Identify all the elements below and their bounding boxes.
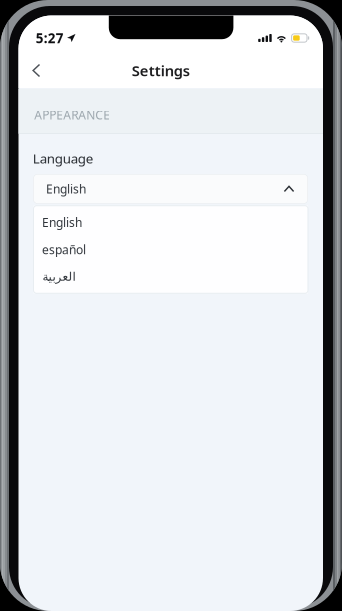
staticText: APPEARANCE	[34, 107, 110, 123]
staticText: English	[46, 181, 86, 197]
button[interactable]: English	[33, 209, 308, 236]
staticText: español	[42, 242, 86, 257]
staticText: English	[42, 214, 82, 230]
staticText: العربية	[42, 270, 75, 283]
staticText: Settings	[132, 61, 190, 80]
button[interactable]: español	[33, 236, 308, 263]
button[interactable]: English	[33, 174, 308, 204]
button[interactable]: العربية	[33, 263, 308, 290]
staticText: 5:27	[36, 29, 64, 47]
staticText: Language	[33, 149, 94, 167]
button[interactable]: Back	[18, 56, 62, 84]
